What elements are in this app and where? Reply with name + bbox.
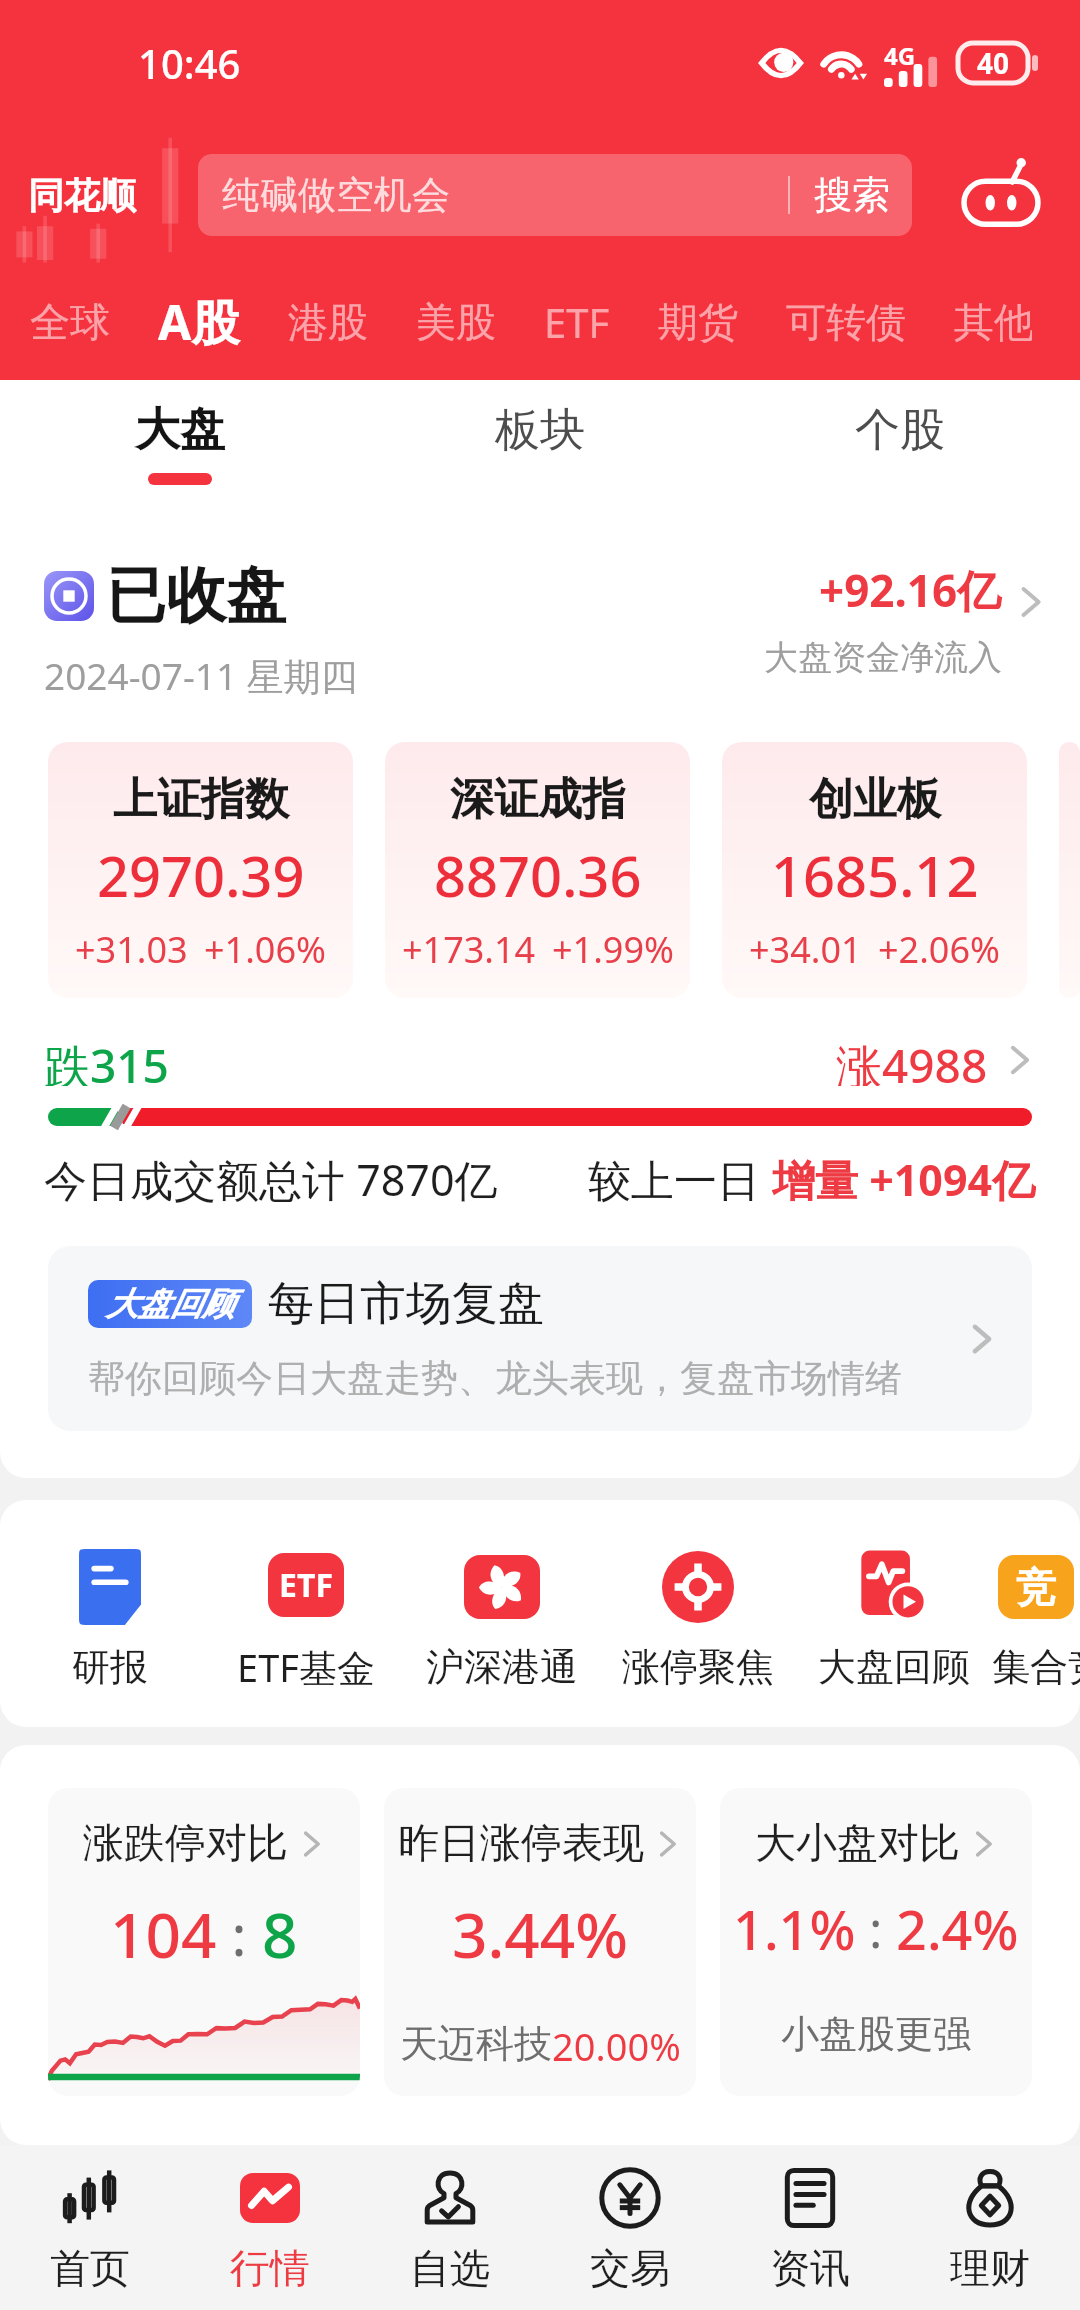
staticText: 小盘股更强 <box>781 2010 971 2058</box>
staticText: 1.1% <box>733 1892 856 1966</box>
button[interactable]: 深证成指 <box>385 742 690 998</box>
button[interactable]: 港股 <box>288 297 416 347</box>
staticText: : <box>217 1896 262 1972</box>
staticText: 跌315 <box>44 1034 169 1086</box>
staticText: 昨日涨停表现 <box>398 1818 644 1870</box>
staticText: 每日市场复盘 <box>268 1275 544 1333</box>
staticText: 同花顺 <box>28 173 136 218</box>
button[interactable]: 理财 <box>900 2145 1080 2310</box>
staticText: 2024-07-11 星期四 <box>44 650 358 701</box>
button[interactable]: 资讯 <box>720 2145 900 2310</box>
button[interactable]: 大小盘对比 <box>720 1788 1032 2096</box>
button[interactable]: 创业板 <box>722 742 1027 998</box>
staticText: +2.06% <box>878 925 1000 974</box>
button[interactable]: 全球 <box>30 297 158 347</box>
staticText: 港股 <box>288 297 368 347</box>
staticText: 大盘回顾 <box>818 1643 970 1691</box>
staticText: 大盘资金净流入 <box>764 636 1002 679</box>
button[interactable]: 研报 <box>12 1549 208 1691</box>
button[interactable]: 上证指数 <box>48 742 353 998</box>
button[interactable]: 大盘回顾 <box>48 1246 1032 1431</box>
button[interactable]: 个股 <box>720 380 1080 500</box>
staticText: 8 <box>262 1892 298 1976</box>
staticText: 涨停聚焦 <box>622 1643 774 1691</box>
staticText: 美股 <box>416 297 496 347</box>
staticText: 1685.12 <box>771 837 979 913</box>
button[interactable]: 涨跌停对比 <box>48 1788 360 2096</box>
staticText: 大小盘对比 <box>755 1818 960 1870</box>
button[interactable]: 昨日涨停表现 <box>384 1788 696 2096</box>
button[interactable]: 沪深港通 <box>404 1549 600 1691</box>
staticText: A股 <box>158 289 240 355</box>
staticText: 其他 <box>954 297 1032 347</box>
button[interactable]: 可转债 <box>786 297 954 347</box>
staticText: 首页 <box>50 2243 130 2293</box>
staticText: +31.03 <box>75 925 188 974</box>
button[interactable]: 美股 <box>416 297 544 347</box>
button[interactable]: 交易 <box>540 2145 720 2310</box>
button[interactable]: ETF <box>544 295 658 349</box>
button[interactable]: 期货 <box>658 297 786 347</box>
staticText: 涨4988 <box>836 1034 988 1086</box>
staticText: : <box>856 1895 896 1963</box>
staticText: 研报 <box>72 1643 148 1691</box>
staticText: 理财 <box>950 2243 1030 2293</box>
staticText: +1.06% <box>204 925 326 974</box>
staticText: 涨跌停对比 <box>83 1818 288 1870</box>
button[interactable]: 跌315 <box>44 1034 1036 1086</box>
staticText: 交易 <box>590 2243 670 2293</box>
staticText: 行情 <box>230 2243 310 2293</box>
staticText: 104 <box>110 1892 217 1976</box>
staticText: 自选 <box>410 2243 490 2293</box>
staticText: 集合竞价 <box>992 1643 1080 1691</box>
staticText: 板块 <box>495 402 585 459</box>
staticText: 今日成交额总计 7870亿 <box>44 1150 498 1206</box>
staticText: 较上一日 <box>588 1150 772 1206</box>
button[interactable]: A股 <box>158 289 288 355</box>
staticText: 2.4% <box>896 1892 1019 1966</box>
staticText: +34.01 <box>749 925 862 974</box>
button[interactable]: 已收盘 <box>0 558 1080 742</box>
staticText: 可转债 <box>786 297 906 347</box>
staticText: ETF基金 <box>237 1641 375 1693</box>
staticText: 3.44% <box>452 1892 629 1976</box>
staticText: 纯碱做空机会 <box>222 171 450 219</box>
button[interactable]: 板块 <box>360 380 720 500</box>
staticText: 竞 <box>1016 1562 1056 1612</box>
button[interactable]: AI assistant <box>958 152 1044 238</box>
staticText: +92.16亿 <box>819 560 1002 620</box>
staticText: 2970.39 <box>97 837 305 913</box>
button[interactable]: ETF <box>208 1547 404 1693</box>
staticText: 创业板 <box>809 772 941 827</box>
staticText: 上证指数 <box>113 772 289 827</box>
staticText: 沪深港通 <box>426 1643 578 1691</box>
staticText: 期货 <box>658 297 738 347</box>
staticText: 资讯 <box>770 2243 850 2293</box>
staticText: 40 <box>977 44 1010 82</box>
button[interactable]: 大盘 <box>0 380 360 500</box>
staticText: 8870.36 <box>434 837 642 913</box>
staticText: +1.99% <box>552 925 674 974</box>
button[interactable]: 自选 <box>360 2145 540 2310</box>
button[interactable]: 纯碱做空机会 <box>198 154 912 236</box>
staticText: 全球 <box>30 297 110 347</box>
staticText: 个股 <box>855 402 945 459</box>
staticText: 天迈科技 <box>400 2020 552 2068</box>
staticText: ETF <box>544 295 610 349</box>
staticText: 搜索 <box>814 171 890 219</box>
staticText: 深证成指 <box>450 772 626 827</box>
button[interactable]: 涨停聚焦 <box>600 1549 796 1691</box>
staticText: 已收盘 <box>106 558 286 634</box>
button[interactable]: 行情 <box>180 2145 360 2310</box>
staticText: 大盘回顾 <box>106 1284 234 1324</box>
button[interactable]: 大盘回顾 <box>796 1549 992 1691</box>
staticText: +173.14 <box>402 925 536 974</box>
staticText: 帮你回顾今日大盘走势、龙头表现，复盘市场情绪 <box>88 1355 902 1402</box>
button[interactable]: 其他 <box>954 297 1080 347</box>
button[interactable]: 竞 <box>992 1549 1080 1691</box>
staticText: 4G <box>884 39 916 72</box>
staticText: ETF <box>279 1563 333 1607</box>
button[interactable]: 首页 <box>0 2145 180 2310</box>
staticText: 10:46 <box>138 36 241 90</box>
staticText: 20.00% <box>552 2020 681 2072</box>
